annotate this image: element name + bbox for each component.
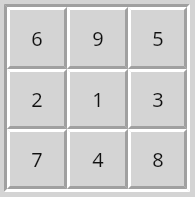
staticText: 8: [152, 146, 164, 173]
staticText: 5: [152, 25, 164, 52]
button[interactable]: 4: [67, 129, 128, 189]
staticText: 7: [31, 146, 43, 173]
button[interactable]: 5: [128, 7, 187, 69]
button[interactable]: 6: [7, 7, 67, 69]
staticText: 4: [92, 146, 104, 173]
button[interactable]: 9: [67, 7, 128, 69]
button[interactable]: 7: [7, 129, 67, 189]
other: Number puzzle board: [4, 4, 190, 192]
button[interactable]: 2: [7, 69, 67, 129]
staticText: 3: [152, 86, 164, 113]
staticText: 6: [31, 25, 43, 52]
button[interactable]: 3: [128, 69, 187, 129]
button[interactable]: 1: [67, 69, 128, 129]
staticText: 2: [31, 86, 43, 113]
staticText: 9: [92, 25, 104, 52]
button[interactable]: 8: [128, 129, 187, 189]
staticText: 1: [92, 86, 104, 113]
